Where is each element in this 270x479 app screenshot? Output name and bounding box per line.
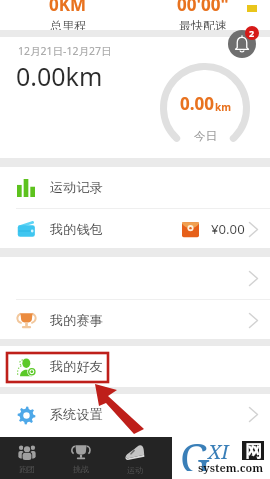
- button[interactable]: 我的赛事: [0, 300, 270, 340]
- staticText: 运动记录: [50, 179, 103, 196]
- staticText: 我的好友: [50, 358, 103, 375]
- button[interactable]: Notifications: [228, 30, 256, 58]
- button[interactable]: 运动记录: [0, 167, 270, 208]
- button[interactable]: 运动: [108, 437, 162, 479]
- staticText: 总里程: [50, 18, 86, 33]
- staticText: 跑团: [19, 464, 35, 474]
- staticText: km: [215, 100, 231, 114]
- staticText: 0KM: [49, 0, 87, 16]
- staticText: G: [180, 429, 210, 471]
- staticText: 我的钱包: [50, 221, 103, 238]
- button[interactable]: 我的好友: [0, 346, 270, 387]
- staticText: 最快配速: [179, 18, 227, 33]
- button[interactable]: 系统设置: [0, 394, 270, 435]
- button[interactable]: 我的钱包: [0, 209, 270, 249]
- staticText: 0.00km: [16, 59, 103, 93]
- staticText: 2: [249, 27, 255, 39]
- staticText: system.com: [198, 460, 264, 475]
- staticText: ¥0.00: [211, 220, 245, 238]
- staticText: 运动: [127, 465, 143, 475]
- staticText: 网: [245, 441, 262, 460]
- staticText: 0.00: [180, 92, 214, 115]
- staticText: XI: [208, 438, 229, 465]
- button[interactable]: 跑团: [0, 437, 54, 479]
- staticText: 今日: [194, 129, 217, 143]
- button[interactable]: 挑战: [54, 437, 108, 479]
- staticText: 系统设置: [50, 406, 103, 423]
- staticText: 挑战: [73, 464, 89, 474]
- staticText: 12月21日-12月27日: [18, 44, 112, 58]
- staticText: 我的赛事: [50, 312, 103, 329]
- staticText: 00'00": [177, 0, 229, 16]
